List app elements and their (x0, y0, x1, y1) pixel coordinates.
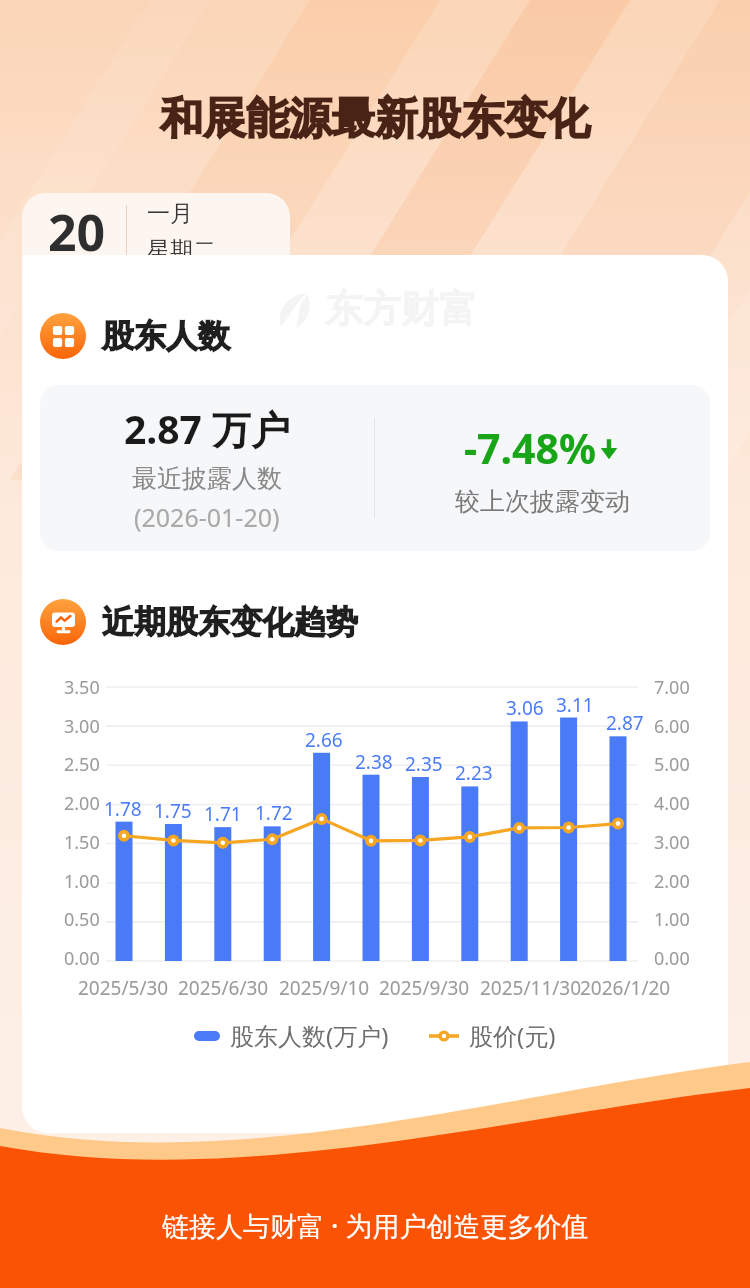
staticText: 2.35 (405, 751, 443, 777)
staticText: 1.50 (64, 830, 100, 855)
staticText: 股东人数 (102, 316, 230, 356)
staticText: 股价(元) (469, 1019, 556, 1052)
staticText: 3.06 (506, 695, 544, 721)
staticText: 2.87 万户 (124, 402, 291, 455)
staticText: 0.00 (654, 946, 690, 971)
staticText: 1.75 (154, 798, 192, 824)
staticText: 3.00 (654, 830, 690, 855)
staticText: 7.00 (654, 675, 690, 700)
staticText: 0.00 (64, 946, 100, 971)
staticText: 2025/6/30 (178, 975, 269, 1001)
staticText: 链接人与财富 · 为用户创造更多价值 (162, 1207, 589, 1244)
staticText: 3.50 (64, 675, 100, 700)
staticText: 股东人数(万户) (230, 1019, 389, 1052)
staticText: 东方财富 (325, 285, 477, 333)
staticText: 较上次披露变动 (455, 486, 630, 517)
other: 变化趋势 (40, 599, 86, 645)
staticText: 1.00 (654, 907, 690, 932)
staticText: 4.00 (654, 791, 690, 816)
button[interactable]: 2.87 万户 (40, 385, 710, 551)
staticText: 2025/9/30 (379, 975, 470, 1001)
button[interactable]: 股价(元) (429, 1019, 556, 1052)
staticText: 2026/1/20 (580, 975, 671, 1001)
staticText: 2025/5/30 (78, 975, 169, 1001)
staticText: 和展能源最新股东变化 (160, 92, 590, 146)
staticText: 6.00 (654, 714, 690, 739)
button[interactable]: 20 (22, 193, 290, 271)
staticText: 最近披露人数 (132, 463, 282, 494)
staticText: 3.11 (556, 692, 594, 718)
staticText: -7.48% (464, 420, 596, 476)
other: 股东人数 (40, 313, 86, 359)
staticText: 1.71 (204, 801, 242, 827)
staticText: 2.50 (64, 752, 100, 777)
staticText: 2.23 (455, 760, 493, 786)
staticText: 2.66 (305, 727, 343, 753)
staticText: 5.00 (654, 752, 690, 777)
staticText: 2025/9/10 (279, 975, 370, 1001)
staticText: 2.87 (606, 710, 644, 736)
staticText: 1.00 (64, 869, 100, 894)
staticText: 近期股东变化趋势 (102, 602, 358, 642)
staticText: 一月 (147, 199, 193, 228)
staticText: 2.38 (355, 749, 393, 775)
staticText: 2.00 (64, 791, 100, 816)
staticText: 1.78 (104, 796, 142, 822)
button[interactable]: 股东人数(万户) (194, 1019, 389, 1052)
button[interactable]: 变化趋势 (40, 599, 358, 645)
staticText: (2026-01-20) (134, 500, 280, 534)
staticText: 2.00 (654, 869, 690, 894)
staticText: 3.00 (64, 714, 100, 739)
staticText: 0.50 (64, 907, 100, 932)
staticText: 1.72 (255, 800, 293, 826)
staticText: 2025/11/30 (480, 975, 582, 1001)
button[interactable]: 股东人数 (40, 313, 230, 359)
staticText: 星期二 (147, 236, 216, 265)
staticText: 20 (48, 198, 106, 266)
